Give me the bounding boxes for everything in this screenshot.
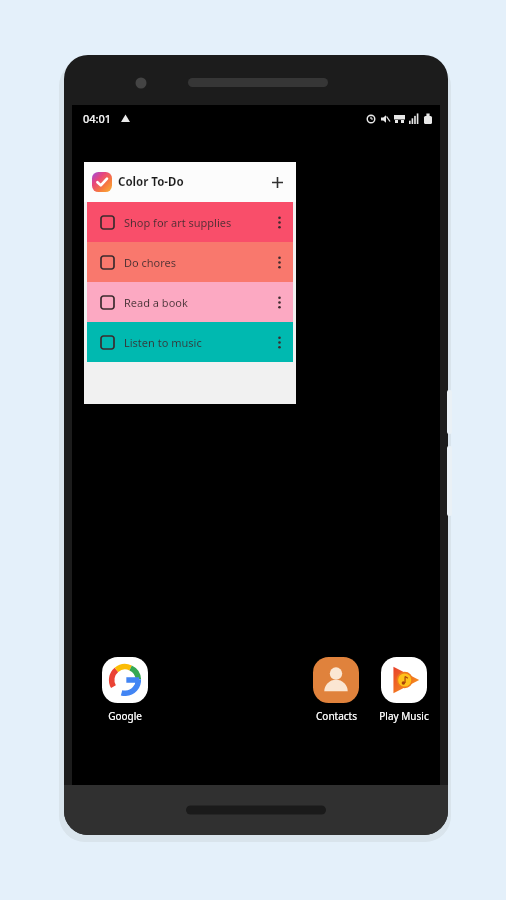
staticText: Google [108,709,142,723]
button[interactable]: Add task [266,171,288,193]
button[interactable]: Toggle Listen to music [97,332,117,352]
button[interactable]: Color To-Do [84,162,296,202]
button[interactable]: Google [91,657,159,723]
staticText: Do chores [124,255,271,270]
staticText: Play Music [379,709,429,723]
button[interactable]: Contacts [302,657,370,723]
button[interactable]: Toggle Read a book [97,292,117,312]
button[interactable]: Toggle Do chores [87,242,293,282]
button[interactable]: Toggle Shop for art supplies [87,202,293,242]
button[interactable]: More options [271,294,287,310]
button[interactable]: More options [271,254,287,270]
button[interactable]: Toggle Listen to music [87,322,293,362]
button[interactable]: Toggle Shop for art supplies [97,212,117,232]
button[interactable]: Toggle Do chores [97,252,117,272]
staticText: Read a book [124,295,271,310]
button[interactable]: More options [271,214,287,230]
staticText: Color To-Do [118,174,184,190]
button[interactable]: Toggle Read a book [87,282,293,322]
staticText: Contacts [316,709,357,723]
button[interactable]: Play Music [370,657,438,723]
staticText: Listen to music [124,335,271,350]
staticText: Shop for art supplies [124,215,271,230]
button[interactable]: More options [271,334,287,350]
staticText: 04:01 [83,111,112,126]
